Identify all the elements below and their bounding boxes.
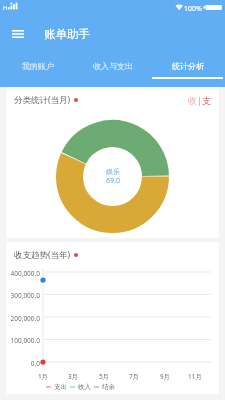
- staticText: 1月: [33, 372, 53, 381]
- staticText: 5月: [94, 372, 114, 381]
- button[interactable]: 支出: [46, 383, 67, 391]
- staticText: 支出: [54, 383, 67, 391]
- staticText: 收入与支出: [93, 61, 133, 71]
- staticText: 娱乐: [106, 167, 120, 176]
- staticText: 3月: [63, 372, 83, 381]
- button[interactable]: 统计分析: [150, 53, 225, 87]
- staticText: 结余: [102, 383, 115, 391]
- staticText: 支: [202, 95, 211, 106]
- button[interactable]: 收入: [70, 383, 91, 391]
- staticText: 100%: [184, 4, 202, 14]
- button[interactable]: Open navigation menu: [0, 15, 36, 53]
- staticText: 收入: [78, 383, 91, 391]
- staticText: 300,000.0: [6, 291, 40, 300]
- button[interactable]: 收入与支出: [75, 53, 150, 87]
- staticText: 收支趋势(当年): [14, 249, 71, 261]
- staticText: |: [197, 94, 202, 106]
- staticText: 400,000.0: [6, 269, 40, 278]
- staticText: H: [3, 4, 8, 11]
- staticText: 我的账户: [22, 61, 54, 71]
- staticText: 分类统计(当月): [14, 94, 71, 106]
- button[interactable]: 收: [188, 94, 211, 106]
- staticText: 100,000.0: [6, 336, 40, 345]
- button[interactable]: 结余: [94, 383, 115, 391]
- staticText: 7月: [124, 372, 144, 381]
- staticText: 账单助手: [44, 27, 90, 41]
- staticText: 0.0: [6, 359, 40, 368]
- staticText: 11月: [185, 372, 205, 381]
- staticText: 收: [188, 95, 197, 106]
- button[interactable]: 我的账户: [0, 53, 75, 87]
- staticText: 9月: [155, 372, 175, 381]
- staticText: 69.0: [106, 176, 120, 186]
- staticText: 200,000.0: [6, 314, 40, 323]
- staticText: 统计分析: [172, 61, 204, 71]
